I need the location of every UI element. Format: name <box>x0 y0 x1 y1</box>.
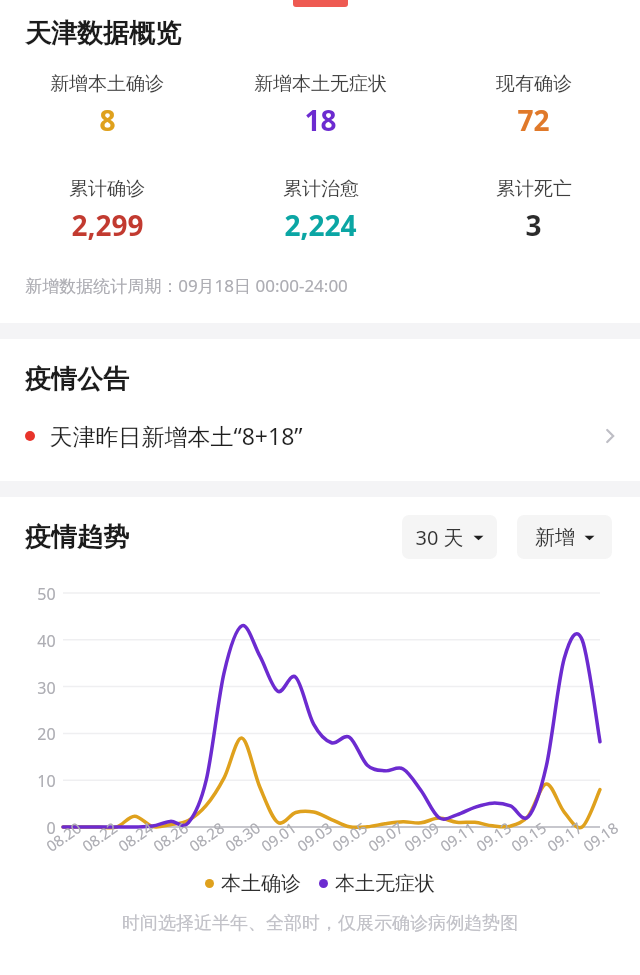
staticText: 新增本土确诊 <box>50 72 164 96</box>
staticText: 新增数据统计周期：09月18日 00:00-24:00 <box>25 274 348 297</box>
staticText: 40 <box>37 630 56 652</box>
staticText: 30 天 <box>415 524 464 551</box>
staticText: 累计确诊 <box>69 177 145 201</box>
button[interactable]: 累计死亡 <box>427 177 640 244</box>
staticText: 09.18 <box>579 817 622 856</box>
staticText: 09.03 <box>293 817 336 856</box>
staticText: 2,224 <box>284 206 357 244</box>
button[interactable]: 30 天 <box>402 515 497 559</box>
staticText: 18 <box>304 101 337 139</box>
staticText: 2,299 <box>71 206 144 244</box>
staticText: 3 <box>525 206 542 244</box>
staticText: 09.09 <box>400 817 443 856</box>
staticText: 08.30 <box>221 817 264 856</box>
button[interactable]: Selected tab <box>293 0 348 7</box>
button[interactable]: 本土确诊 <box>205 871 301 896</box>
staticText: 本土确诊 <box>221 871 301 896</box>
button[interactable]: 累计确诊 <box>0 177 214 244</box>
staticText: 本土无症状 <box>335 871 435 896</box>
staticText: 09.15 <box>507 817 550 856</box>
staticText: 20 <box>37 723 56 745</box>
staticText: 天津昨日新增本土“8+18” <box>49 420 303 451</box>
staticText: 72 <box>517 101 550 139</box>
staticText: 08.20 <box>42 817 85 856</box>
staticText: 08.26 <box>149 817 192 856</box>
staticText: 09.07 <box>364 817 407 856</box>
staticText: 09.01 <box>257 817 300 856</box>
staticText: 09.13 <box>472 817 515 856</box>
staticText: 8 <box>99 101 116 139</box>
staticText: 新增本土无症状 <box>254 72 387 96</box>
staticText: 天津数据概览 <box>25 17 181 50</box>
button[interactable]: 新增 <box>517 515 612 559</box>
staticText: 10 <box>37 770 56 792</box>
staticText: 08.22 <box>78 817 121 856</box>
staticText: 时间选择近半年、全部时，仅展示确诊病例趋势图 <box>122 912 518 935</box>
staticText: 30 <box>37 677 56 699</box>
staticText: 08.28 <box>185 817 228 856</box>
staticText: 疫情公告 <box>25 363 129 396</box>
staticText: 累计治愈 <box>283 177 359 201</box>
staticText: 50 <box>37 583 56 605</box>
staticText: 09.11 <box>436 817 479 856</box>
staticText: 累计死亡 <box>496 177 572 201</box>
button[interactable]: 新增本土确诊 <box>0 72 214 139</box>
button[interactable]: 本土无症状 <box>319 871 435 896</box>
staticText: 0 <box>46 817 56 839</box>
button[interactable]: 现有确诊 <box>427 72 640 139</box>
button[interactable]: 新增本土无症状 <box>214 72 427 139</box>
staticText: 09.05 <box>328 817 371 856</box>
staticText: 08.24 <box>114 817 157 856</box>
staticText: 新增 <box>535 525 575 550</box>
staticText: 09.17 <box>543 817 586 856</box>
button[interactable]: 天津昨日新增本土“8+18” <box>0 416 640 455</box>
button[interactable]: 累计治愈 <box>214 177 427 244</box>
staticText: 现有确诊 <box>496 72 572 96</box>
staticText: 疫情趋势 <box>25 521 129 554</box>
